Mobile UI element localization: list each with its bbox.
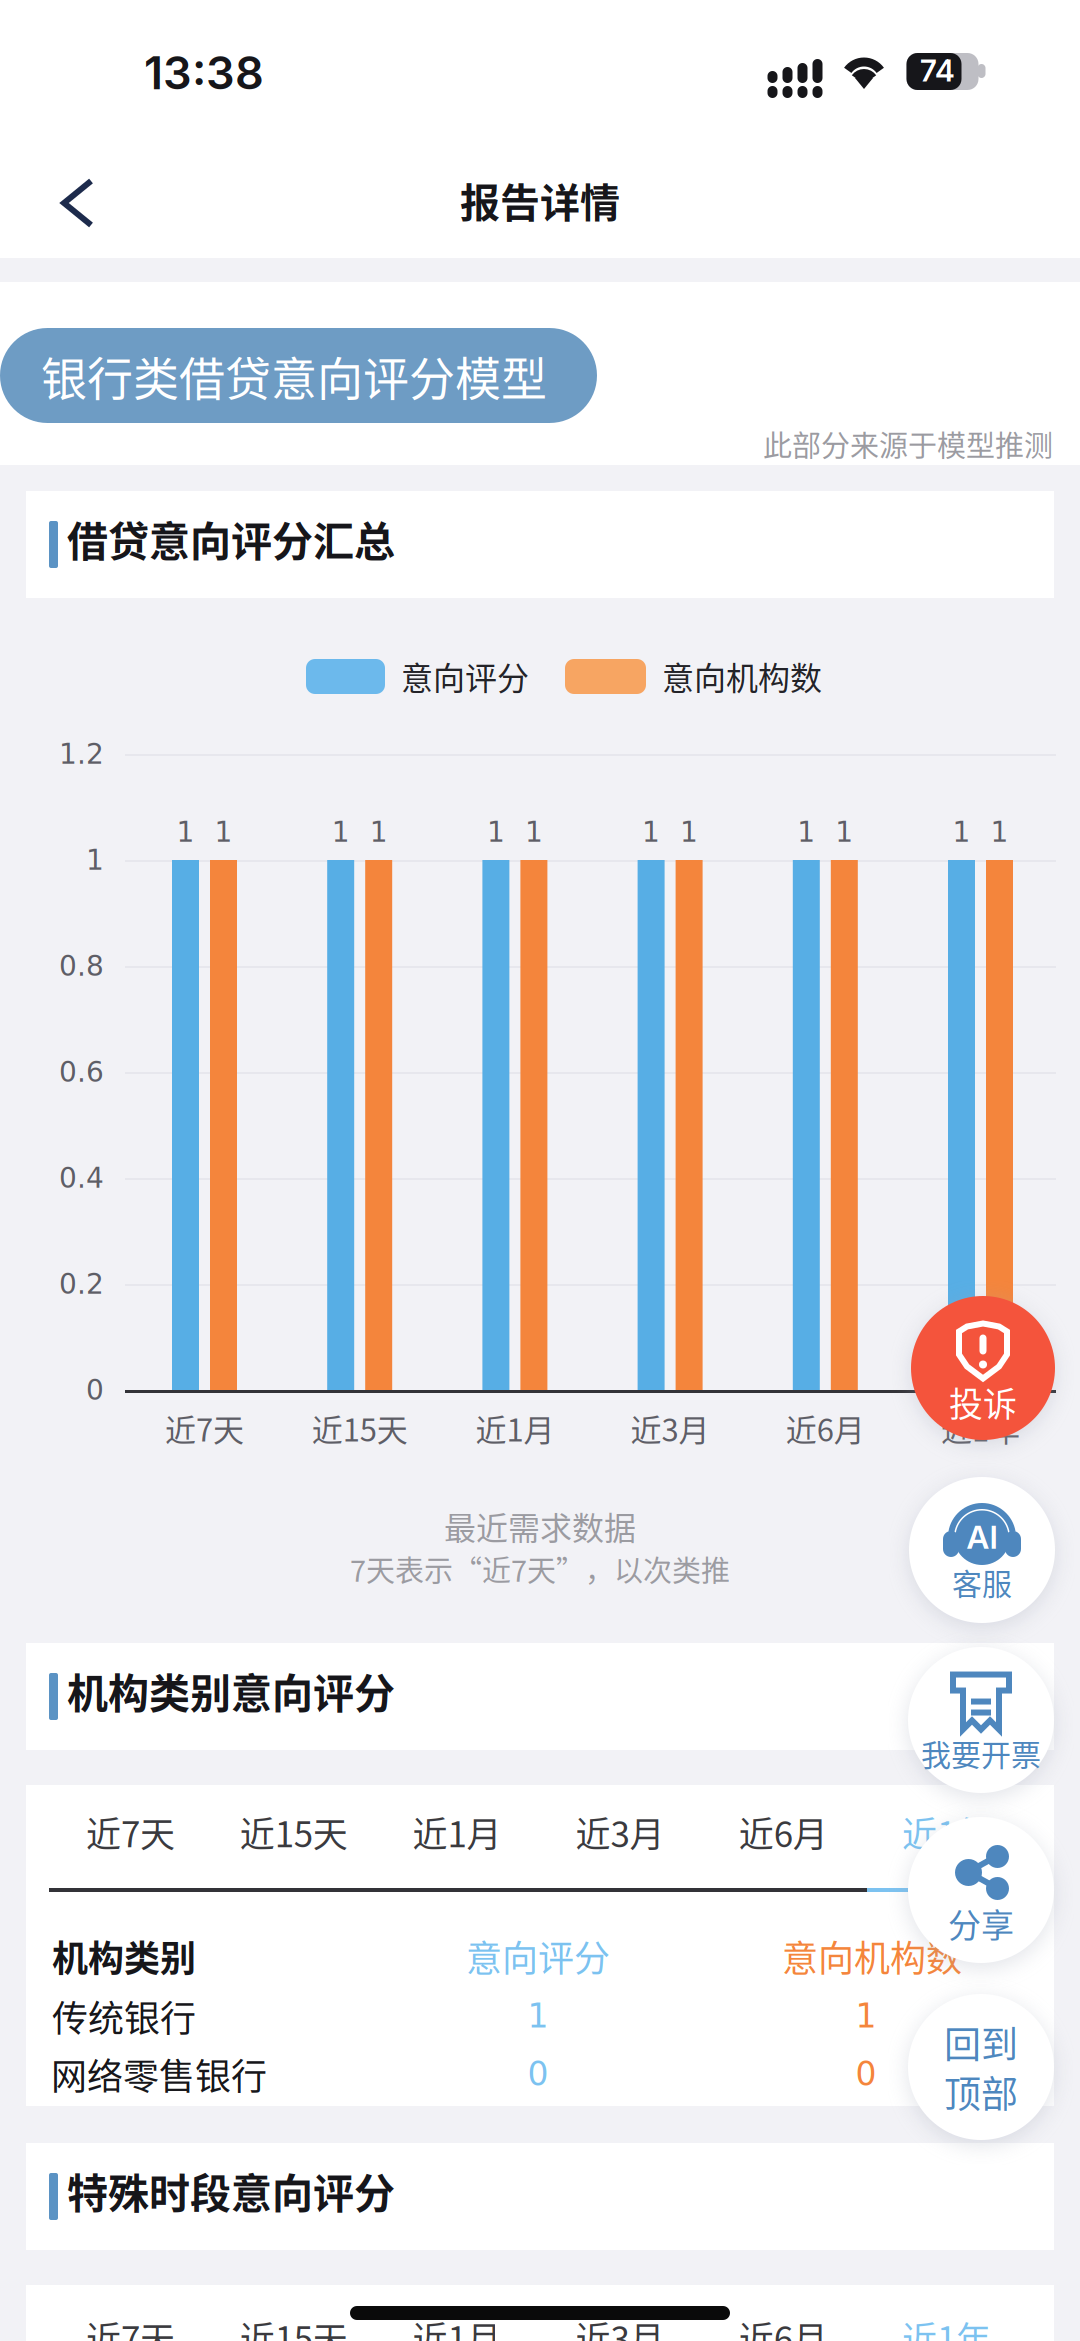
staticText: 投诉 (949, 1377, 1017, 1427)
staticText: 最近需求数据 (444, 1503, 636, 1549)
staticText: 近1年 (902, 2312, 991, 2341)
staticText: 1 (332, 816, 350, 848)
button[interactable]: 客服 (909, 1477, 1055, 1623)
staticText: 特殊时段意向评分 (67, 2161, 395, 2220)
button[interactable]: 近7天 (49, 2292, 212, 2341)
staticText: 7天表示“近7天”，以次类推 (350, 1548, 730, 1590)
staticText: 0.4 (59, 1162, 104, 1194)
staticText: 分享 (948, 1899, 1014, 1947)
staticText: 1 (855, 1997, 876, 2035)
staticText: 机构类别 (52, 1930, 196, 1982)
staticText: 1 (642, 816, 660, 848)
button[interactable]: 回到顶部 (908, 1994, 1054, 2140)
button[interactable]: 近7天 (49, 1787, 212, 1877)
button[interactable]: 近6月 (702, 1787, 865, 1877)
staticText: 近3月 (576, 1807, 665, 1857)
staticText: 近15天 (312, 1406, 408, 1450)
staticText: 74 (920, 52, 955, 89)
staticText: 近3月 (576, 2312, 665, 2341)
staticText: 1 (527, 1997, 548, 2035)
staticText: 意向评分 (466, 1930, 610, 1982)
button[interactable]: 近15天 (212, 1787, 375, 1877)
staticText: 机构类别意向评分 (67, 1661, 395, 1720)
staticText: 13:38 (144, 46, 264, 100)
staticText: 近1月 (412, 2312, 501, 2341)
staticText: 近7天 (86, 2312, 175, 2341)
staticText: 0.2 (59, 1268, 104, 1300)
staticText: 近6月 (786, 1406, 865, 1450)
staticText: 1 (990, 816, 1008, 848)
button[interactable]: 近1年 (865, 2292, 1028, 2341)
staticText: 近1年 (941, 1406, 1020, 1450)
staticText: 此部分来源于模型推测 (763, 423, 1053, 465)
staticText: 近6月 (739, 1807, 828, 1857)
button[interactable]: 返回 (14, 150, 134, 256)
button[interactable]: 近15天 (212, 2292, 375, 2341)
button[interactable]: 投诉 (911, 1296, 1055, 1440)
staticText: 近15天 (240, 1807, 348, 1857)
button[interactable]: 近3月 (538, 2292, 702, 2341)
staticText: 银行类借贷意向评分模型 (41, 342, 547, 409)
staticText: 近7天 (165, 1406, 244, 1450)
button[interactable]: 近6月 (702, 2292, 865, 2341)
staticText: 近3月 (631, 1406, 710, 1450)
staticText: 近7天 (86, 1807, 175, 1857)
staticText: 1 (86, 844, 104, 876)
staticText: 1 (525, 816, 543, 848)
staticText: 1 (370, 816, 388, 848)
button[interactable]: 近1月 (375, 2292, 538, 2341)
staticText: 传统银行 (52, 1990, 196, 2042)
staticText: 1 (487, 816, 505, 848)
staticText: 报告详情 (460, 171, 620, 229)
staticText: 意向机构数 (782, 1930, 962, 1982)
staticText: 1 (176, 816, 194, 848)
staticText: 近1月 (475, 1406, 554, 1450)
staticText: 借贷意向评分汇总 (67, 509, 395, 568)
button[interactable]: 近1年 (865, 1787, 1028, 1877)
staticText: 意向评分 (401, 653, 529, 699)
button[interactable]: 我要开票 (908, 1647, 1054, 1793)
staticText: 回到 (944, 2015, 1018, 2069)
staticText: 1 (214, 816, 232, 848)
staticText: 1.2 (59, 738, 104, 770)
staticText: 0.8 (59, 950, 104, 982)
staticText: 0 (855, 2055, 876, 2093)
staticText: 0 (86, 1374, 104, 1406)
staticText: 0.6 (59, 1056, 104, 1088)
staticText: 1 (797, 816, 815, 848)
staticText: 近1年 (902, 1807, 991, 1857)
staticText: 近6月 (739, 2312, 828, 2341)
staticText: AI (966, 1518, 997, 1556)
staticText: 1 (680, 816, 698, 848)
staticText: 网络零售银行 (51, 2048, 267, 2100)
button[interactable]: 近3月 (538, 1787, 702, 1877)
button[interactable]: 近1月 (375, 1787, 538, 1877)
staticText: 顶部 (944, 2065, 1018, 2119)
button[interactable]: 分享 (908, 1817, 1054, 1963)
staticText: 1 (952, 816, 970, 848)
staticText: 1 (835, 816, 853, 848)
staticText: 我要开票 (921, 1731, 1041, 1775)
staticText: 客服 (952, 1560, 1012, 1604)
staticText: 近15天 (240, 2312, 348, 2341)
staticText: 近1月 (412, 1807, 501, 1857)
staticText: 意向机构数 (662, 653, 822, 699)
staticText: 0 (527, 2055, 548, 2093)
